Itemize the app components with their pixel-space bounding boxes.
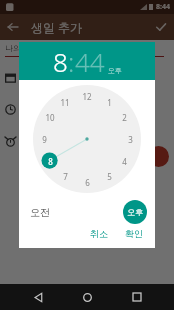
button[interactable]: Back [26, 285, 50, 309]
button[interactable]: Recent apps [125, 285, 149, 309]
staticText: 확인 [125, 228, 143, 239]
staticText: 오전 [30, 206, 50, 219]
staticText: 5 [107, 171, 112, 182]
button[interactable]: Navigate up [0, 14, 26, 40]
staticText: 12 [82, 91, 92, 102]
button[interactable]: Select hour [33, 85, 141, 193]
staticText: 9 [42, 134, 47, 145]
staticText: 10 [45, 112, 55, 123]
staticText: : [68, 44, 75, 79]
staticText: 44 [75, 44, 105, 79]
button[interactable]: Save [148, 14, 174, 40]
staticText: 생일 추가 [31, 19, 83, 35]
staticText: 2 [122, 112, 127, 123]
button[interactable]: 8 [19, 42, 155, 80]
staticText: 나의 [5, 43, 21, 53]
button[interactable]: 오후 [123, 200, 147, 224]
button[interactable]: 취소 [84, 226, 114, 241]
staticText: 1 [107, 97, 112, 108]
staticText: 3 [128, 134, 133, 145]
staticText: 11 [60, 97, 70, 108]
button[interactable]: 오전 [27, 202, 53, 223]
button[interactable]: Home [75, 285, 99, 309]
staticText: 8 [48, 156, 53, 167]
button[interactable]: 확인 [119, 226, 149, 241]
staticText: 8:44 [156, 2, 170, 12]
staticText: 4 [122, 156, 127, 167]
button[interactable]: Add birthday [148, 146, 169, 167]
staticText: 오후 [127, 207, 143, 217]
staticText: 8 [53, 44, 68, 79]
staticText: 오후 [108, 66, 122, 75]
staticText: 7 [63, 171, 68, 182]
staticText: 6 [85, 177, 90, 188]
staticText: 취소 [90, 228, 108, 239]
